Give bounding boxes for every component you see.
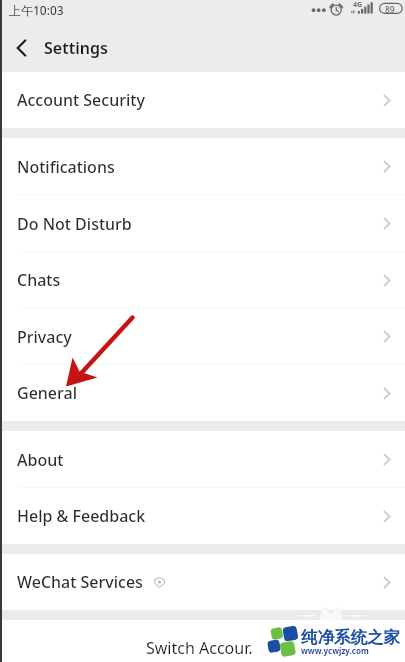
button[interactable]: Chats [0,252,405,308]
staticText: Privacy [17,326,72,348]
button[interactable]: Notifications [0,138,405,195]
staticText: About [17,449,64,471]
button[interactable]: General [0,365,405,421]
staticText: Settings [44,37,108,59]
button[interactable]: WeChat Services [0,554,405,610]
button[interactable]: Do Not Disturb [0,195,405,252]
staticText: Do Not Disturb [17,213,132,235]
staticText: 上午10:03 [9,2,64,18]
staticText: WeChat Services [17,571,143,593]
button[interactable]: About [0,431,405,488]
button[interactable]: Account Security [0,72,405,128]
staticText: 纯净系统之家 [301,627,400,648]
staticText: General [17,382,77,404]
button[interactable]: Back [0,26,44,70]
staticText: 4G [353,0,363,10]
button[interactable]: Privacy [0,308,405,365]
staticText: www.ycwjzy.com [301,645,369,656]
staticText: Chats [17,269,61,291]
staticText: Account Security [17,89,145,111]
staticText: Help & Feedback [17,505,146,527]
staticText: Notifications [17,156,115,178]
button[interactable]: Switch Accour. [0,620,405,662]
staticText: Switch Accour. [146,637,253,659]
button[interactable]: Help & Feedback [0,488,405,544]
staticText: 89 [385,4,395,16]
